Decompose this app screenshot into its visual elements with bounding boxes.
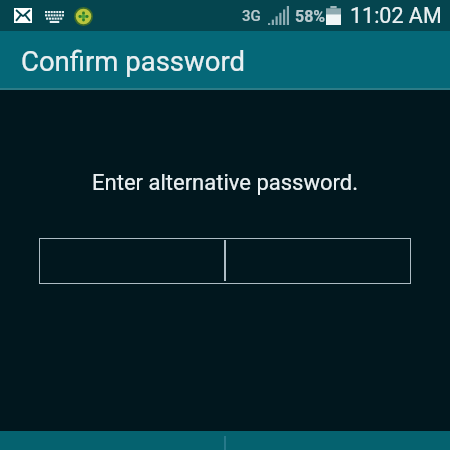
other: Keyboard (45, 11, 64, 23)
staticText: Confirm password (21, 45, 245, 77)
other: New message (14, 8, 32, 23)
button[interactable]: Password entry field (39, 238, 411, 284)
staticText: 3G (242, 7, 261, 25)
staticText: 11:02 AM (350, 3, 442, 28)
other: Signal strength (268, 6, 289, 25)
button[interactable]: Confirm password (0, 31, 450, 88)
other: Battery 58 percent (326, 6, 341, 25)
staticText: Enter alternative password. (0, 170, 450, 196)
other: App notification (74, 7, 93, 26)
staticText: 58% (295, 7, 326, 26)
